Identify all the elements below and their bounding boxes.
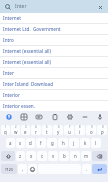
staticText: r (35, 129, 37, 135)
staticText: u (68, 129, 71, 135)
button[interactable]: j (69, 138, 79, 148)
staticText: 1 (5, 125, 7, 129)
button[interactable]: m (81, 151, 91, 161)
button[interactable]: h (58, 138, 68, 148)
staticText: a (9, 140, 12, 146)
button[interactable]: f (36, 138, 46, 148)
staticText: Interior (3, 92, 20, 98)
button[interactable]: ?123 (1, 164, 17, 174)
button[interactable]: 3 (21, 125, 30, 135)
button[interactable]: d (26, 138, 35, 148)
button[interactable]: 1 (1, 125, 10, 135)
button[interactable]: Internet (essential all) (0, 46, 108, 56)
staticText: d (29, 140, 32, 146)
staticText: Internet (essential all) (3, 59, 51, 65)
button[interactable]: v (48, 151, 58, 161)
button[interactable]: 0 (97, 125, 107, 135)
staticText: 5 (46, 125, 48, 129)
staticText: Inter (3, 70, 14, 76)
button[interactable]: . (82, 164, 91, 174)
button[interactable]: 2 (11, 125, 20, 135)
button[interactable]: Interior essen. (0, 101, 108, 111)
button[interactable]: n (70, 151, 80, 161)
staticText: 4 (35, 125, 37, 129)
button[interactable]: 4 (31, 125, 41, 135)
button[interactable]: Voice input (94, 111, 105, 122)
staticText: f (40, 140, 42, 146)
staticText: Internet Ltd. Government (3, 26, 61, 32)
button[interactable]: More options (79, 111, 90, 122)
button[interactable]: 7 (64, 125, 74, 135)
button[interactable]: l (91, 138, 101, 148)
staticText: 6 (58, 125, 60, 129)
button[interactable]: 6 (53, 125, 63, 135)
staticText: w (14, 129, 18, 135)
button[interactable]: Clipboard (49, 111, 60, 122)
staticText: 9 (91, 125, 93, 129)
staticText: n (74, 153, 77, 159)
button[interactable]: Enter (92, 164, 107, 174)
staticText: 0 (102, 125, 104, 129)
button[interactable]: 9 (86, 125, 96, 135)
button[interactable]: Intro (0, 35, 108, 45)
staticText: Interior essen. (3, 103, 35, 109)
button[interactable]: x (26, 151, 36, 161)
button[interactable]: Inter Island Download (0, 79, 108, 89)
staticText: 3 (25, 125, 27, 129)
staticText: t (46, 129, 48, 135)
staticText: b (63, 153, 66, 159)
button[interactable]: k (80, 138, 90, 148)
button[interactable]: GIF (33, 111, 44, 122)
button[interactable]: 8 (75, 125, 85, 135)
button[interactable]: a (6, 138, 15, 148)
staticText: m (84, 153, 89, 159)
staticText: l (95, 140, 97, 146)
staticText: Intro (3, 37, 14, 43)
button[interactable]: c (37, 151, 47, 161)
staticText: j (73, 140, 75, 146)
staticText: 7 (69, 125, 71, 129)
button[interactable]: Search (4, 3, 12, 11)
button[interactable]: Shift (1, 151, 15, 161)
button[interactable]: Google Assistant (3, 111, 14, 122)
staticText: p (101, 129, 104, 135)
button[interactable]: Clear query (96, 3, 104, 11)
staticText: i (79, 129, 81, 135)
button[interactable]: b (59, 151, 69, 161)
staticText: ?123 (5, 167, 13, 172)
staticText: k (84, 140, 87, 146)
button[interactable]: z (16, 151, 25, 161)
staticText: Inter Island Download (3, 81, 54, 87)
button[interactable]: , (18, 164, 27, 174)
staticText: s (19, 140, 22, 146)
button[interactable]: Inter (0, 68, 108, 78)
staticText: , (22, 166, 24, 172)
button[interactable]: Internet (0, 13, 108, 23)
staticText: v (52, 153, 55, 159)
staticText: Inter (15, 3, 96, 10)
staticText: y (57, 129, 60, 135)
staticText: . (86, 166, 88, 172)
button[interactable]: g (47, 138, 57, 148)
button[interactable]: s (16, 138, 25, 148)
button[interactable]: Internet (essential all) (0, 57, 108, 67)
staticText: e (24, 129, 27, 135)
button[interactable]: Themes (18, 111, 29, 122)
staticText: h (62, 140, 65, 146)
staticText: o (90, 129, 93, 135)
button[interactable]: Backspace (92, 151, 107, 161)
staticText: x (30, 153, 33, 159)
staticText: g (51, 140, 54, 146)
staticText: Internet (3, 15, 22, 21)
button[interactable]: Internet Ltd. Government (0, 24, 108, 34)
button[interactable]: Interior (0, 90, 108, 100)
staticText: 2 (15, 125, 17, 129)
staticText: q (4, 129, 7, 135)
button[interactable]: Settings (64, 111, 75, 122)
staticText: z (19, 153, 22, 159)
button[interactable]: 5 (42, 125, 52, 135)
button[interactable]: Emoji (28, 164, 37, 174)
staticText: Internet (essential all) (3, 48, 51, 54)
button[interactable]: Search (0, 0, 108, 13)
